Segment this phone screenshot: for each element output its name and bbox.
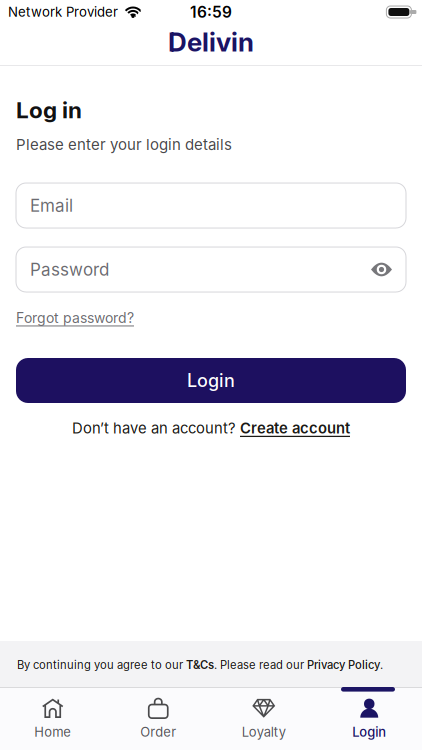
staticText: Network Provider: [8, 4, 118, 20]
staticText: Email: [30, 195, 73, 216]
staticText: Login: [187, 370, 235, 391]
button[interactable]: Login: [16, 358, 406, 403]
button[interactable]: Don’t have an account? Create account: [72, 419, 350, 437]
staticText: Don’t have an account? Create account: [72, 419, 350, 437]
staticText: By continuing you agree to our T&Cs. Ple…: [17, 658, 383, 672]
button[interactable]: Forgot password?: [16, 309, 134, 326]
staticText: Please enter your login details: [16, 135, 232, 153]
button[interactable]: Email: [16, 183, 406, 228]
staticText: Password: [30, 259, 109, 280]
button[interactable]: Login: [316, 691, 422, 747]
staticText: Forgot password?: [16, 309, 134, 326]
button[interactable]: Password: [16, 247, 406, 292]
staticText: Login: [352, 724, 386, 740]
staticText: Order: [140, 724, 176, 740]
button[interactable]: Home: [0, 691, 105, 747]
button[interactable]: Show password: [371, 263, 392, 276]
button[interactable]: Loyalty: [211, 691, 316, 747]
staticText: Log in: [16, 96, 82, 124]
staticText: Loyalty: [242, 724, 286, 740]
staticText: Home: [34, 724, 71, 740]
staticText: Delivin: [168, 26, 254, 58]
staticText: 16:59: [190, 3, 232, 21]
button[interactable]: Order: [105, 691, 211, 747]
